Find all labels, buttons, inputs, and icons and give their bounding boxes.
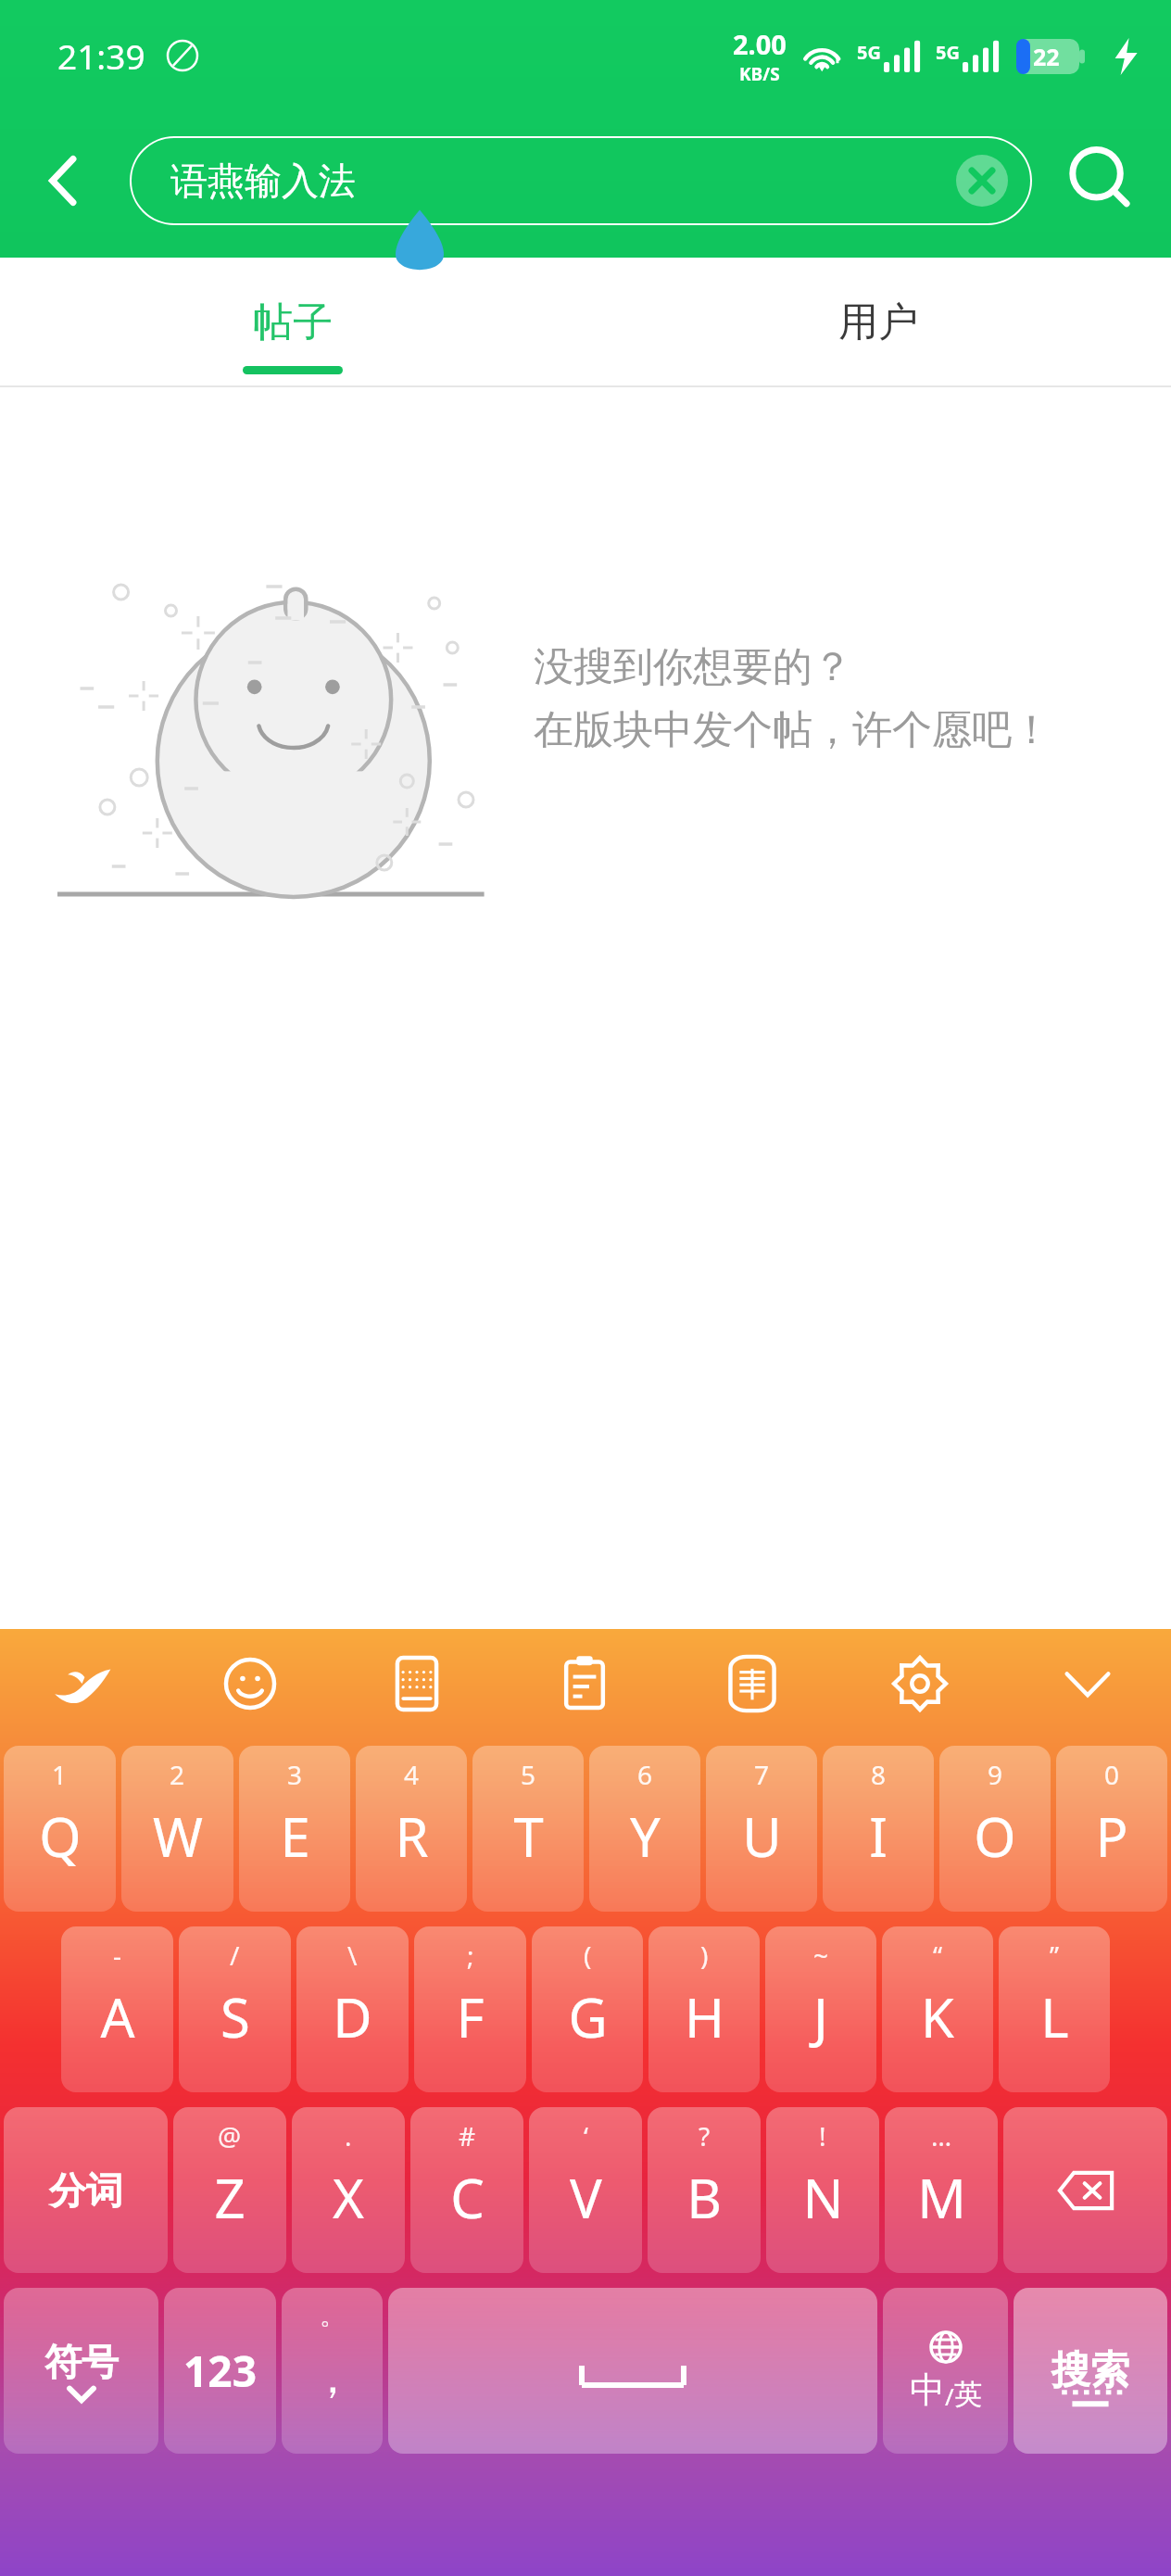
staticText: 用户: [838, 297, 918, 347]
button[interactable]: …: [885, 2107, 998, 2273]
button[interactable]: ?: [648, 2107, 761, 2273]
staticText: @: [218, 2118, 242, 2153]
staticText: 符号: [44, 2339, 119, 2385]
staticText: 7: [754, 1757, 770, 1792]
staticText: R: [395, 1799, 429, 1873]
staticText: 6: [637, 1757, 653, 1792]
staticText: ‘: [584, 2118, 588, 2153]
button[interactable]: 符号: [4, 2288, 158, 2454]
staticText: .: [345, 2118, 352, 2153]
staticText: ，: [311, 2352, 354, 2406]
button[interactable]: Back: [0, 130, 130, 232]
button[interactable]: 搜索: [1014, 2288, 1167, 2454]
staticText: …: [931, 2118, 952, 2153]
button[interactable]: 分词: [4, 2107, 168, 2273]
staticText: 英: [954, 2377, 982, 2412]
staticText: 搜索: [1051, 2346, 1129, 2395]
staticText: E: [280, 1799, 310, 1873]
button[interactable]: ;: [414, 1926, 526, 2092]
button[interactable]: -: [61, 1926, 173, 2092]
staticText: T: [513, 1799, 544, 1873]
staticText: ”: [1050, 1938, 1060, 1973]
staticText: F: [456, 1980, 485, 2053]
button[interactable]: 9: [939, 1746, 1051, 1912]
button[interactable]: Hide keyboard: [1003, 1629, 1171, 1738]
staticText: ?: [699, 2118, 711, 2153]
button[interactable]: [1003, 2107, 1167, 2273]
staticText: H: [685, 1980, 724, 2053]
button[interactable]: 2: [121, 1746, 233, 1912]
staticText: #: [459, 2118, 476, 2153]
button[interactable]: 7: [706, 1746, 817, 1912]
staticText: “: [933, 1938, 943, 1973]
staticText: B: [686, 2161, 722, 2234]
button[interactable]: @: [173, 2107, 286, 2273]
button[interactable]: Search: [1032, 130, 1171, 232]
button[interactable]: 3: [239, 1746, 350, 1912]
button[interactable]: 4: [356, 1746, 467, 1912]
button[interactable]: 语燕输入法: [130, 136, 1032, 225]
staticText: -: [113, 1938, 122, 1973]
button[interactable]: #: [410, 2107, 523, 2273]
button[interactable]: Keyboard: [334, 1629, 500, 1738]
staticText: /: [945, 2380, 954, 2412]
button[interactable]: 0: [1056, 1746, 1167, 1912]
staticText: 0: [1104, 1757, 1120, 1792]
button[interactable]: ”: [999, 1926, 1110, 2092]
button[interactable]: ~: [765, 1926, 876, 2092]
staticText: \: [347, 1938, 358, 1973]
staticText: 在版块中发个帖，许个愿吧！: [534, 705, 1051, 755]
staticText: 8: [871, 1757, 887, 1792]
staticText: D: [333, 1980, 372, 2053]
staticText: /: [230, 1938, 240, 1973]
staticText: Q: [39, 1799, 82, 1873]
button[interactable]: Clipboard: [500, 1629, 668, 1738]
button[interactable]: !: [766, 2107, 879, 2273]
button[interactable]: 5: [472, 1746, 584, 1912]
staticText: Y: [630, 1799, 661, 1873]
staticText: 22: [1033, 41, 1060, 72]
staticText: 2: [170, 1757, 185, 1792]
staticText: 5G: [936, 40, 960, 65]
button[interactable]: Clear: [956, 155, 1008, 207]
button[interactable]: 8: [823, 1746, 934, 1912]
staticText: 5G: [857, 40, 881, 65]
button[interactable]: Emoji: [167, 1629, 334, 1738]
button[interactable]: 1: [4, 1746, 116, 1912]
staticText: S: [220, 1980, 250, 2053]
button[interactable]: ‘: [529, 2107, 642, 2273]
staticText: L: [1040, 1980, 1069, 2053]
staticText: C: [450, 2161, 485, 2234]
button[interactable]: Space: [388, 2288, 877, 2454]
button[interactable]: 123: [164, 2288, 276, 2454]
button[interactable]: 帖子: [0, 258, 585, 387]
staticText: 1: [52, 1757, 68, 1792]
staticText: P: [1095, 1799, 1128, 1873]
button[interactable]: (: [532, 1926, 643, 2092]
button[interactable]: 。: [282, 2288, 383, 2454]
staticText: 中: [910, 2368, 945, 2412]
button[interactable]: .: [292, 2107, 405, 2273]
button[interactable]: 中: [883, 2288, 1008, 2454]
staticText: (: [584, 1938, 592, 1973]
staticText: I: [869, 1799, 888, 1873]
staticText: G: [568, 1980, 608, 2053]
button[interactable]: 6: [589, 1746, 700, 1912]
staticText: V: [570, 2161, 602, 2234]
button[interactable]: “: [882, 1926, 993, 2092]
button[interactable]: Settings: [836, 1629, 1003, 1738]
button[interactable]: Traditional: [668, 1629, 836, 1738]
staticText: ): [700, 1938, 709, 1973]
button[interactable]: \: [296, 1926, 409, 2092]
staticText: Z: [214, 2161, 246, 2234]
button[interactable]: ): [648, 1926, 760, 2092]
staticText: KB/S: [739, 62, 780, 86]
staticText: 123: [183, 2342, 257, 2400]
staticText: J: [813, 1980, 828, 2053]
staticText: 3: [287, 1757, 303, 1792]
staticText: 21:39: [57, 32, 145, 79]
button[interactable]: Logo: [0, 1629, 167, 1738]
button[interactable]: 用户: [585, 258, 1171, 387]
button[interactable]: /: [179, 1926, 291, 2092]
staticText: 。: [320, 2299, 346, 2331]
